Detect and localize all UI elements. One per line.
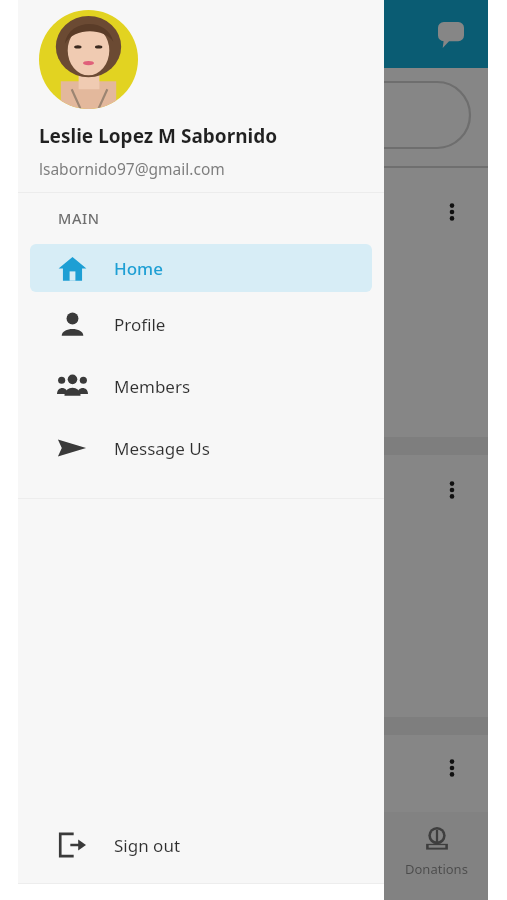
staticText: Profile (114, 313, 166, 336)
button[interactable]: Profile (30, 300, 372, 348)
staticText: Message Us (114, 437, 210, 460)
button[interactable]: More options (434, 750, 470, 786)
button[interactable]: Home (30, 244, 372, 292)
staticText: Home (114, 257, 163, 280)
button[interactable]: More options (434, 472, 470, 508)
staticText: Members (114, 375, 191, 398)
button[interactable]: Message Us (30, 424, 372, 472)
button[interactable]: Members (30, 362, 372, 410)
staticText: Sign out (114, 834, 181, 857)
button[interactable]: Messages (432, 16, 470, 54)
staticText: MAIN (58, 208, 100, 228)
staticText: lsabornido97@gmail.com (39, 158, 225, 179)
staticText: Leslie Lopez M Sabornido (39, 123, 278, 149)
button[interactable]: Donations (384, 812, 488, 900)
staticText: Donations (405, 860, 468, 878)
button[interactable]: Sign out (30, 821, 372, 869)
button[interactable]: Profile photo (39, 10, 138, 109)
button[interactable]: More options (434, 194, 470, 230)
